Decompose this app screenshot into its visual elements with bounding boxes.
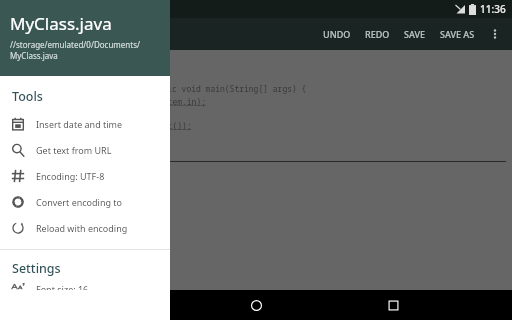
button[interactable]: Get text from URL <box>0 137 170 163</box>
staticText: Font size: 16 <box>36 283 89 290</box>
staticText: Reload with encoding <box>36 222 128 234</box>
button[interactable]: More options <box>482 21 508 47</box>
staticText: Settings <box>12 260 61 277</box>
button[interactable]: REDO <box>358 22 397 46</box>
staticText: Get text from URL <box>36 144 112 156</box>
button[interactable]: Home <box>239 290 273 320</box>
staticText: SAVE AS <box>440 28 475 40</box>
button[interactable]: Insert date and time <box>0 111 170 137</box>
button[interactable]: UNDO <box>316 22 358 46</box>
button[interactable]: Encoding: UTF-8 <box>0 163 170 189</box>
staticText: //storage/emulated/0/Documents/ MyClass.… <box>10 39 140 61</box>
button[interactable]: Font size: 16 <box>0 283 170 290</box>
staticText: Tools <box>12 88 43 105</box>
staticText: Scanner reader = new Scanner(System.in); <box>14 96 206 107</box>
staticText: MyClass.java <box>10 12 112 35</box>
button[interactable]: Recents <box>376 290 410 320</box>
staticText: Encoding: UTF-8 <box>36 170 105 182</box>
staticText: System.out.println(reader.nextInt()); <box>14 120 192 131</box>
button[interactable]: Reload with encoding <box>0 215 170 241</box>
staticText: SAVE <box>404 28 426 40</box>
staticText: 11:36 <box>480 2 506 16</box>
staticText: UNDO <box>323 28 351 40</box>
button[interactable]: Convert encoding to <box>0 189 170 215</box>
staticText: Insert date and time <box>36 118 123 130</box>
button[interactable]: SAVE <box>397 22 433 46</box>
button[interactable]: SAVE AS <box>433 22 482 46</box>
staticText: Convert encoding to <box>36 196 123 208</box>
staticText: public class MyClass { public static voi… <box>4 83 307 94</box>
staticText: REDO <box>365 28 390 40</box>
